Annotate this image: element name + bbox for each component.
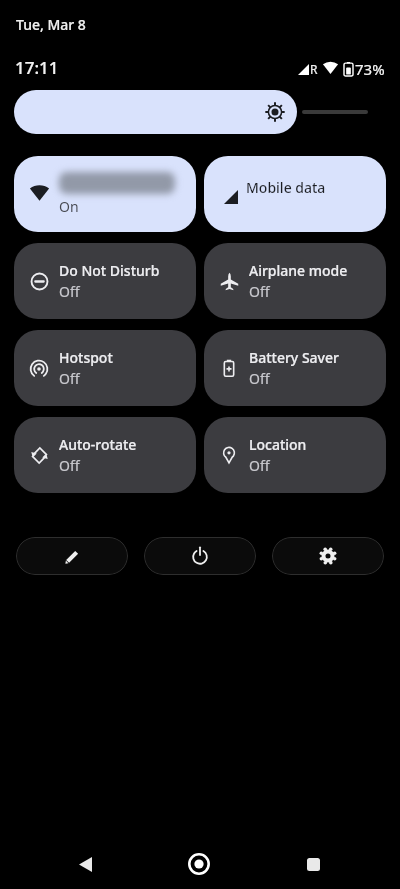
staticText: R <box>310 61 318 77</box>
staticText: Tue, Mar 8 <box>16 15 86 34</box>
button[interactable] <box>272 537 384 575</box>
staticText: Airplane mode <box>249 261 348 280</box>
staticText: Off <box>249 282 270 301</box>
staticText: Hotspot <box>59 348 113 367</box>
staticText: Battery Saver <box>249 348 339 367</box>
button[interactable]: On <box>14 156 196 232</box>
staticText: 17:11 <box>15 56 59 79</box>
button[interactable] <box>180 845 218 883</box>
staticText: Off <box>59 282 80 301</box>
button[interactable] <box>294 845 332 883</box>
staticText: 73% <box>355 59 385 79</box>
staticText: Off <box>59 369 80 388</box>
staticText: Location <box>249 435 307 454</box>
staticText: Off <box>249 369 270 388</box>
button[interactable] <box>14 90 297 134</box>
button[interactable]: Battery Saver <box>204 330 386 406</box>
button[interactable] <box>66 845 104 883</box>
staticText: Mobile data <box>246 178 326 197</box>
button[interactable]: Do Not Disturb <box>14 243 196 319</box>
staticText: Auto-rotate <box>59 435 137 454</box>
button[interactable] <box>16 537 128 575</box>
button[interactable]: Location <box>204 417 386 493</box>
button[interactable]: Mobile data <box>204 156 386 232</box>
button[interactable]: Auto-rotate <box>14 417 196 493</box>
button[interactable]: Airplane mode <box>204 243 386 319</box>
staticText: Off <box>59 456 80 475</box>
staticText: On <box>59 197 79 216</box>
staticText: Do Not Disturb <box>59 261 160 280</box>
button[interactable]: Hotspot <box>14 330 196 406</box>
staticText: Off <box>249 456 270 475</box>
button[interactable] <box>144 537 256 575</box>
